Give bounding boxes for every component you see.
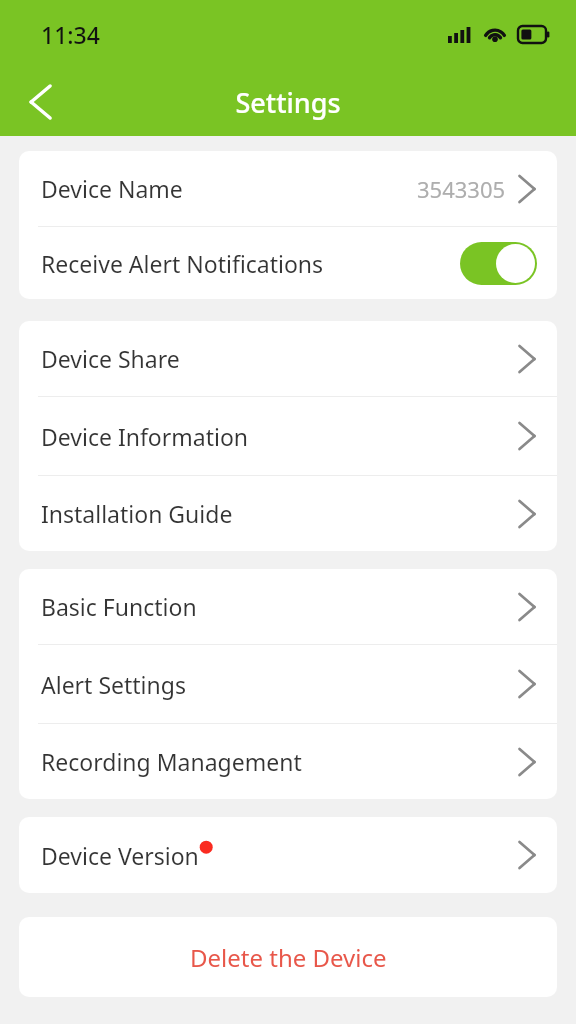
staticText: Delete the Device — [190, 941, 387, 974]
button[interactable]: Receive Alert Notifications — [460, 242, 537, 285]
button[interactable]: Device Name — [19, 151, 557, 226]
staticText: Device Information — [41, 421, 249, 452]
staticText: Recording Management — [41, 746, 302, 777]
staticText: Device Version — [41, 840, 199, 871]
button[interactable]: Back — [0, 68, 76, 136]
staticText: Alert Settings — [41, 669, 186, 700]
staticText: Receive Alert Notifications — [41, 248, 324, 279]
button[interactable]: Basic Function — [19, 569, 557, 644]
button[interactable]: Delete the Device — [19, 917, 557, 997]
button[interactable]: Device Information — [19, 397, 557, 475]
button[interactable]: Installation Guide — [19, 476, 557, 551]
staticText: Installation Guide — [41, 498, 233, 529]
button[interactable]: Device Share — [19, 321, 557, 396]
staticText: 11:34 — [41, 19, 100, 50]
button[interactable]: Device Version — [19, 817, 557, 893]
button[interactable]: Alert Settings — [19, 645, 557, 723]
button[interactable]: Receive Alert Notifications — [19, 227, 557, 299]
button[interactable]: Recording Management — [19, 724, 557, 799]
staticText: Device Name — [41, 173, 183, 204]
staticText: Settings — [235, 84, 341, 121]
staticText: Device Share — [41, 343, 180, 374]
staticText: Basic Function — [41, 591, 197, 622]
staticText: 3543305 — [417, 174, 506, 204]
